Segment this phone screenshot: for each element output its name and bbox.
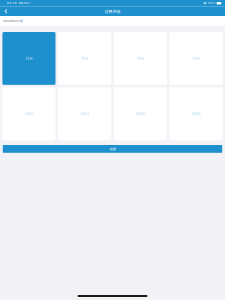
staticText: 充值	[109, 146, 115, 151]
staticText: 500元	[192, 112, 201, 116]
staticText: 10:51 AM	[7, 2, 17, 5]
staticText: 100元	[24, 112, 33, 116]
staticText: 话费充值	[104, 8, 120, 14]
button[interactable]: Back	[0, 6, 12, 16]
button[interactable]: 10元	[2, 32, 55, 85]
staticText: 13601193221	[3, 19, 21, 23]
staticText: Mon Dec 2	[19, 2, 30, 5]
staticText: 100%	[208, 2, 215, 5]
staticText: 300元	[136, 112, 145, 116]
staticText: 200元	[80, 112, 89, 116]
staticText: 10元	[25, 56, 32, 61]
staticText: 50元	[193, 56, 200, 61]
staticText: 30元	[137, 56, 144, 61]
staticText: 20元	[81, 56, 88, 61]
button[interactable]: 充值	[3, 145, 222, 153]
